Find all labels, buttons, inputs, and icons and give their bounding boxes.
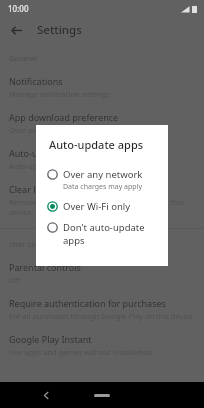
staticText: App download preference	[9, 111, 119, 123]
staticText: Clear local search history	[9, 183, 115, 195]
staticText: Use apps and games without installation	[9, 347, 153, 357]
staticText: User controls	[9, 239, 57, 249]
staticText: Manage notification settings	[9, 89, 110, 99]
staticText: 10:00	[8, 3, 29, 14]
staticText: General	[9, 53, 38, 63]
button[interactable]: Home	[88, 388, 116, 403]
button[interactable]: Parental controls	[0, 261, 204, 285]
staticText: Settings	[37, 22, 82, 38]
staticText: Data charges may apply	[63, 182, 142, 192]
staticText: Over any network	[63, 168, 143, 181]
button[interactable]: Clear local search history	[0, 183, 204, 217]
staticText: Notifications	[9, 75, 63, 87]
staticText: Off	[9, 275, 21, 285]
staticText: Auto-update apps	[49, 137, 144, 152]
staticText: Don't auto-update apps	[63, 221, 160, 247]
button[interactable]: Require authentication for purchases	[0, 297, 204, 321]
button[interactable]: Back	[38, 387, 54, 403]
staticText: Require authentication for purchases	[9, 297, 166, 309]
staticText: Google Play Instant	[9, 333, 92, 345]
button[interactable]: Google Play Instant	[0, 333, 204, 357]
button[interactable]: App download preference	[0, 111, 204, 135]
button[interactable]: Back	[7, 21, 25, 39]
button[interactable]: Notifications	[0, 75, 204, 99]
button[interactable]: Auto-update apps	[0, 147, 204, 171]
staticText: Parental controls	[9, 261, 81, 273]
staticText: Over Wi-Fi only	[63, 200, 131, 213]
staticText: Auto-update apps	[9, 147, 85, 159]
staticText: Remove the searches you have performed o…	[9, 197, 195, 217]
button[interactable]: Over any network	[36, 164, 168, 196]
staticText: Over any network	[9, 125, 72, 135]
button[interactable]: Don't auto-update apps	[36, 217, 168, 251]
button[interactable]: Over Wi-Fi only	[36, 196, 168, 217]
staticText: Auto-update apps over Wi-Fi only	[9, 161, 126, 171]
staticText: For all purchases through Google Play on…	[9, 311, 194, 321]
